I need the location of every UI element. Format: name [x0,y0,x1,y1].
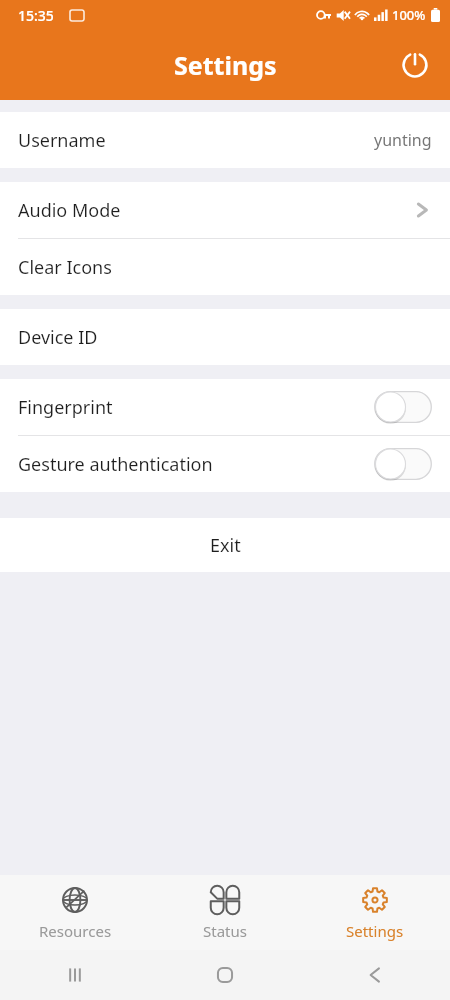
staticText: 15:35 [18,6,54,25]
button[interactable]: Toggle [374,391,432,423]
button[interactable]: Status [150,875,300,950]
button[interactable]: Audio Mode [0,182,450,238]
staticText: Settings [174,48,277,82]
button[interactable]: Device ID [0,309,450,365]
button[interactable]: Power off [394,44,436,86]
button[interactable]: Username [0,112,450,168]
staticText: Resources [39,921,112,941]
staticText: Exit [210,533,241,558]
button[interactable]: Toggle [374,448,432,480]
staticText: Username [18,128,106,153]
staticText: Clear Icons [18,255,112,280]
staticText: yunting [374,129,432,151]
staticText: Settings [346,921,404,941]
button[interactable]: Fingerprint [0,379,450,435]
button[interactable]: Settings [300,875,450,950]
button[interactable]: Clear Icons [0,239,450,295]
staticText: Audio Mode [18,198,121,223]
button[interactable]: Gesture authentication [0,436,450,492]
button[interactable]: Exit [0,518,450,572]
staticText: Gesture authentication [18,452,213,477]
staticText: 100% [392,6,426,24]
staticText: Status [203,921,247,941]
staticText: Device ID [18,325,98,350]
staticText: Fingerprint [18,395,113,420]
button[interactable]: Resources [0,875,150,950]
